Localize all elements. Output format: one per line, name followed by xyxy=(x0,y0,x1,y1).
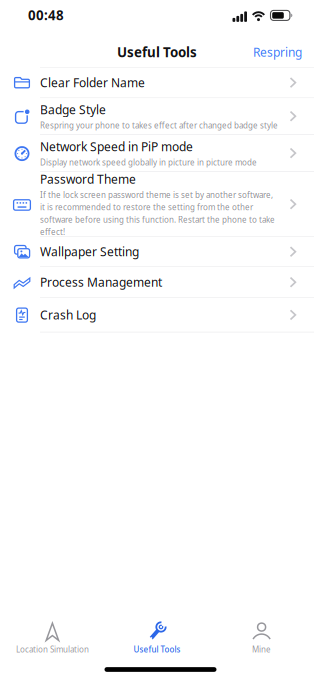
button[interactable]: Location Simulation xyxy=(0,612,105,662)
staticText: Badge Style xyxy=(40,102,106,118)
button[interactable]: Clear Folder Name xyxy=(0,68,314,98)
staticText: Crash Log xyxy=(40,307,96,323)
staticText: 00:48 xyxy=(28,6,64,24)
staticText: Clear Folder Name xyxy=(40,75,145,90)
staticText: Respring your phone to takes effect afte… xyxy=(40,120,278,131)
button[interactable]: Password Theme xyxy=(0,172,314,237)
staticText: If the lock screen password theme is set… xyxy=(40,190,275,237)
button[interactable]: Badge Style xyxy=(0,98,314,135)
button[interactable]: Crash Log xyxy=(0,298,314,332)
staticText: Display network speed globally in pictur… xyxy=(40,157,257,168)
staticText: Mine xyxy=(252,644,271,655)
button[interactable]: Process Management xyxy=(0,267,314,298)
button[interactable]: Respring xyxy=(253,44,314,60)
staticText: Wallpaper Setting xyxy=(40,244,139,260)
button[interactable]: Mine xyxy=(209,612,314,662)
button[interactable]: Wallpaper Setting xyxy=(0,237,314,267)
staticText: Useful Tools xyxy=(117,43,197,61)
staticText: Respring xyxy=(253,44,302,60)
staticText: Useful Tools xyxy=(133,644,180,655)
staticText: Password Theme xyxy=(40,171,136,187)
staticText: Location Simulation xyxy=(16,644,89,655)
staticText: Process Management xyxy=(40,274,162,290)
button[interactable]: Useful Tools xyxy=(105,612,209,662)
button[interactable]: Network Speed in PiP mode xyxy=(0,135,314,172)
staticText: Network Speed in PiP mode xyxy=(40,139,193,154)
